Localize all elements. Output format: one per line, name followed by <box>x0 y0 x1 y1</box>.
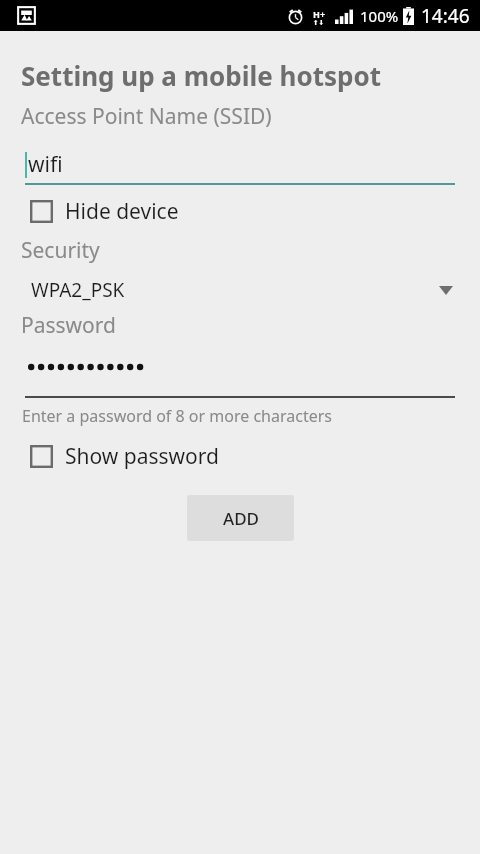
staticText: Enter a password of 8 or more characters <box>22 405 332 427</box>
staticText: 14:46 <box>421 3 470 29</box>
staticText: Access Point Name (SSID) <box>21 102 272 131</box>
staticText: ADD <box>223 507 259 530</box>
button[interactable]: ADD <box>187 495 294 541</box>
button[interactable]: Hide device <box>0 193 480 229</box>
staticText: Security <box>21 236 100 265</box>
staticText: Show password <box>65 442 219 471</box>
button[interactable]: wifi <box>0 143 480 185</box>
button[interactable]: WPA2_PSK <box>0 273 480 307</box>
staticText: wifi <box>28 150 63 179</box>
button[interactable] <box>0 352 480 398</box>
staticText: 100% <box>360 6 399 26</box>
staticText: Hide device <box>65 197 179 226</box>
staticText: H+ <box>313 8 326 20</box>
staticText: WPA2_PSK <box>31 277 125 303</box>
button[interactable]: Show password <box>0 438 480 474</box>
staticText: Setting up a mobile hotspot <box>21 58 381 93</box>
staticText: Password <box>21 311 116 340</box>
